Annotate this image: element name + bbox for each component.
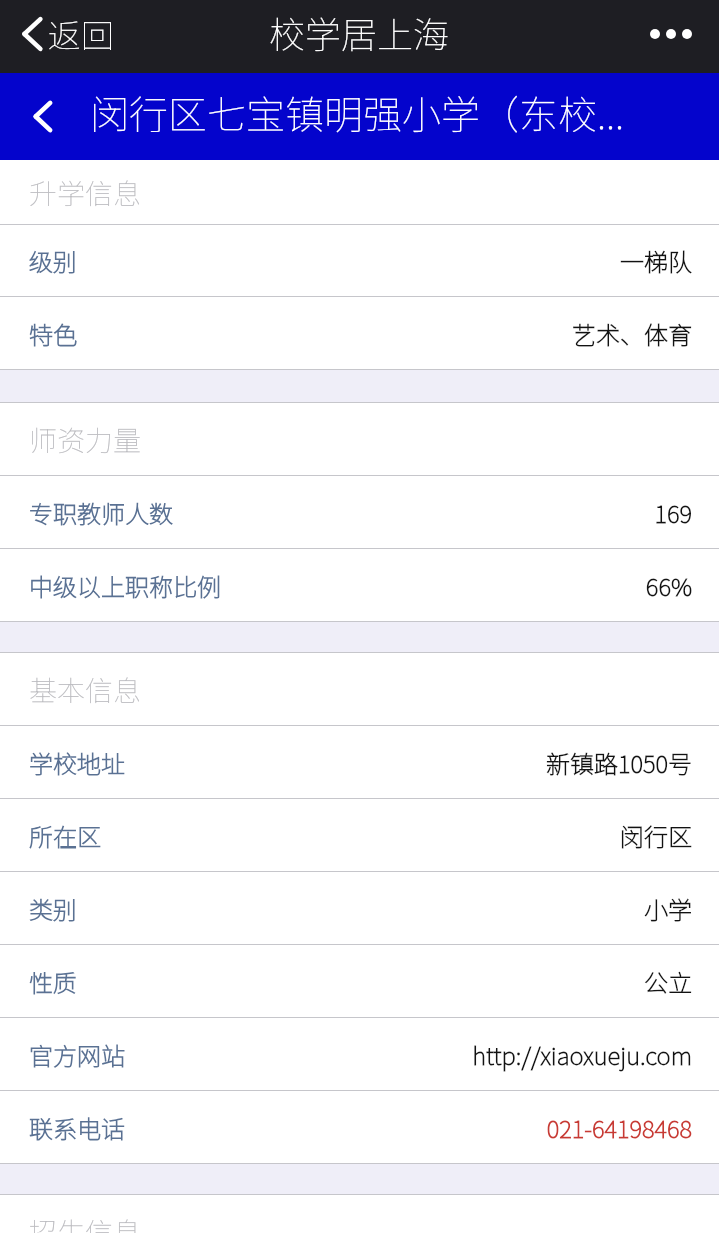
staticText: 师资力量 xyxy=(29,419,142,460)
button[interactable]: 联系电话 xyxy=(0,1091,719,1163)
staticText: 官方网站 xyxy=(29,1037,125,1072)
button[interactable]: 中级以上职称比例 xyxy=(0,549,719,621)
button[interactable]: 官方网站 xyxy=(0,1018,719,1090)
button[interactable]: Back xyxy=(0,73,85,160)
button[interactable]: 类别 xyxy=(0,872,719,944)
staticText: 专职教师人数 xyxy=(29,495,173,530)
staticText: 闵行区 xyxy=(620,818,692,853)
staticText: 艺术、体育 xyxy=(572,316,692,351)
staticText: 公立 xyxy=(644,964,692,999)
staticText: 新镇路1050号 xyxy=(545,745,692,780)
staticText: 169 xyxy=(654,495,692,530)
button[interactable]: 学校地址 xyxy=(0,726,719,798)
staticText: 升学信息 xyxy=(29,172,142,213)
button[interactable]: 级别 xyxy=(0,225,719,296)
staticText: 联系电话 xyxy=(29,1110,125,1145)
staticText: 小学 xyxy=(644,891,692,926)
button[interactable]: 性质 xyxy=(0,945,719,1017)
staticText: 所在区 xyxy=(29,818,101,853)
button[interactable]: More options xyxy=(630,0,719,67)
button[interactable]: 特色 xyxy=(0,297,719,369)
staticText: 招生信息 xyxy=(29,1211,142,1233)
button[interactable]: 返回 xyxy=(0,0,124,67)
staticText: 021-64198468 xyxy=(546,1110,692,1145)
staticText: 中级以上职称比例 xyxy=(29,568,221,603)
button[interactable]: 专职教师人数 xyxy=(0,476,719,548)
staticText: 特色 xyxy=(29,316,77,351)
staticText: 返回 xyxy=(48,10,114,58)
button[interactable]: 所在区 xyxy=(0,799,719,871)
staticText: 性质 xyxy=(29,964,77,999)
staticText: 闵行区七宝镇明强小学（东校... xyxy=(90,84,625,140)
staticText: 类别 xyxy=(29,891,77,926)
staticText: http://xiaoxueju.com xyxy=(472,1037,692,1072)
staticText: 一梯队 xyxy=(620,243,692,278)
staticText: 学校地址 xyxy=(29,745,125,780)
staticText: 66% xyxy=(645,568,692,603)
staticText: 级别 xyxy=(29,243,77,278)
staticText: 基本信息 xyxy=(29,669,142,710)
staticText: 校学居上海 xyxy=(269,6,450,58)
